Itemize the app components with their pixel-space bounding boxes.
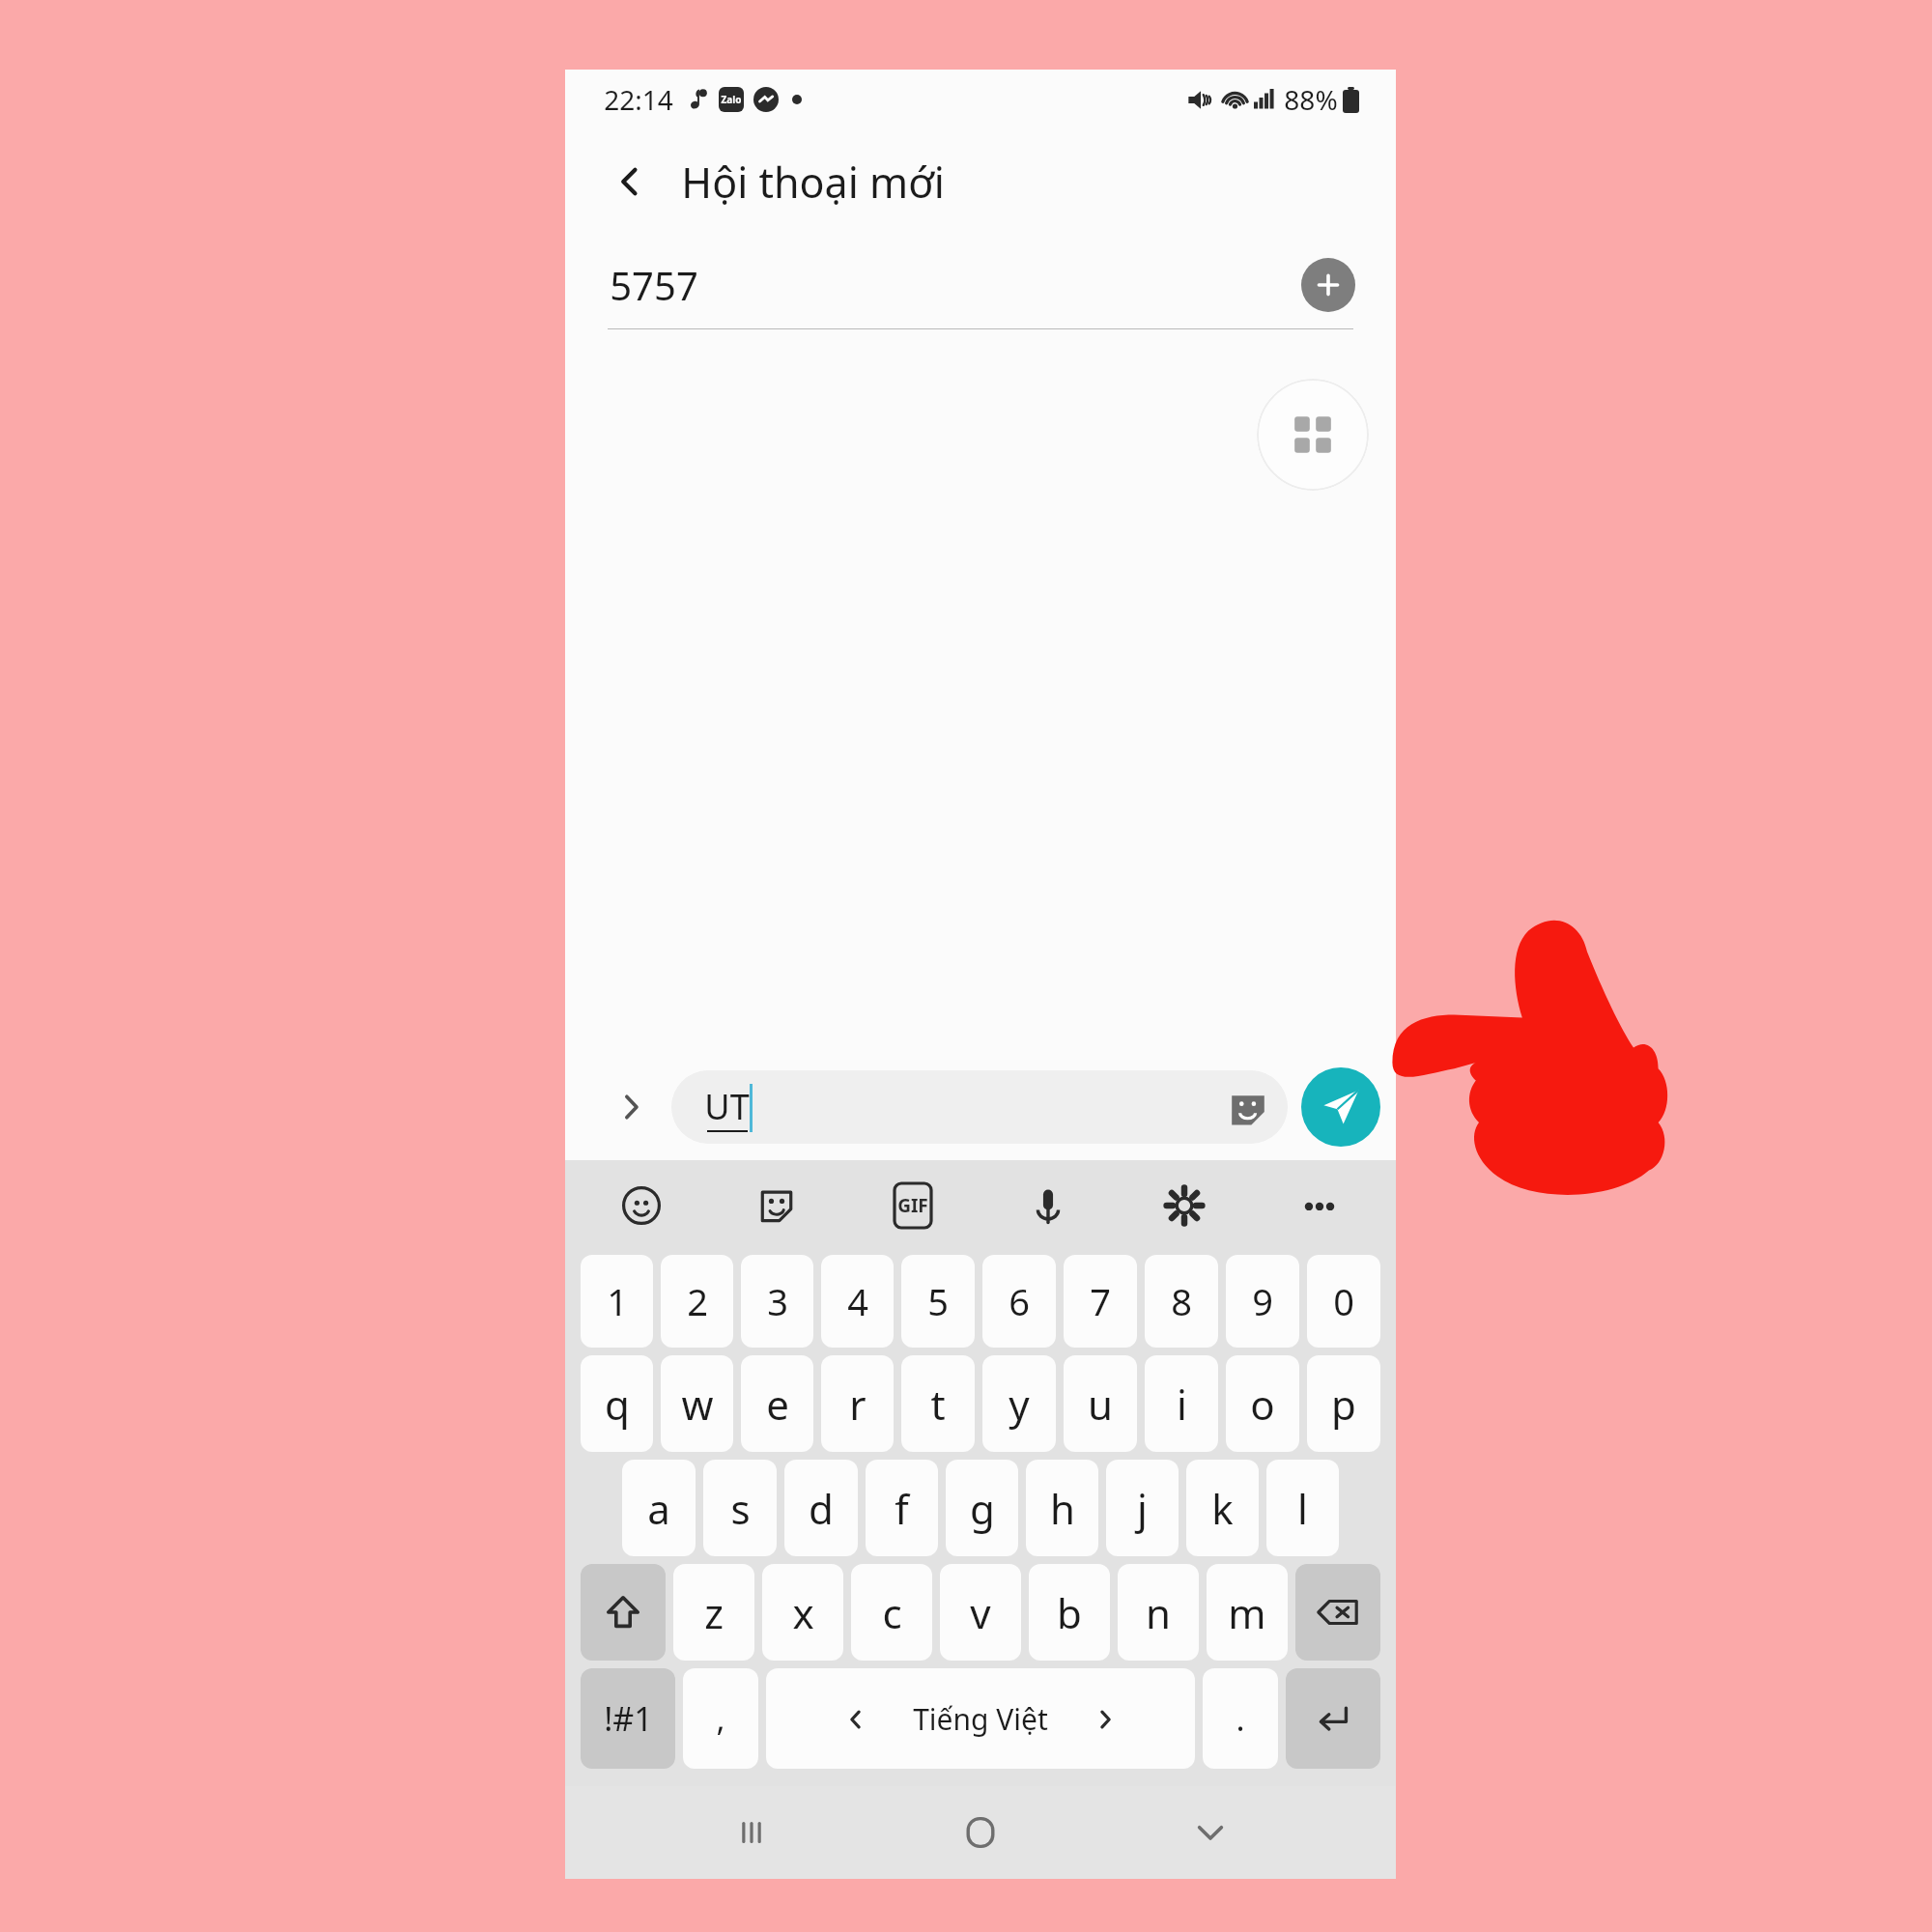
button[interactable]: 5 <box>901 1255 975 1348</box>
button[interactable]: Hide keyboard <box>1167 1789 1254 1876</box>
staticText: , <box>716 1696 725 1741</box>
button[interactable]: 2 <box>661 1255 733 1348</box>
button[interactable]: Enter <box>1286 1668 1380 1769</box>
button[interactable]: c <box>851 1564 932 1661</box>
button[interactable]: q <box>581 1355 653 1452</box>
button[interactable]: d <box>784 1460 858 1556</box>
staticText: y <box>1009 1377 1030 1432</box>
button[interactable]: k <box>1186 1460 1259 1556</box>
staticText: Hội thoại mới <box>681 154 945 211</box>
button[interactable]: Recents <box>708 1789 795 1876</box>
staticText: n <box>1146 1585 1171 1640</box>
button[interactable]: More options <box>1290 1176 1350 1236</box>
staticText: o <box>1250 1377 1275 1432</box>
button[interactable]: UT <box>671 1070 1288 1144</box>
button[interactable]: t <box>901 1355 975 1452</box>
button[interactable]: 8 <box>1145 1255 1218 1348</box>
button[interactable]: s <box>703 1460 777 1556</box>
staticText: e <box>766 1377 789 1432</box>
staticText: i <box>1177 1377 1187 1432</box>
button[interactable]: , <box>683 1668 758 1769</box>
button[interactable]: Tiếng Việt <box>766 1668 1195 1769</box>
staticText: Tiếng Việt <box>913 1699 1048 1739</box>
button[interactable]: j <box>1106 1460 1179 1556</box>
button[interactable]: u <box>1064 1355 1137 1452</box>
staticText: 22:14 <box>604 81 673 118</box>
staticText: GIF <box>897 1193 928 1218</box>
staticText: Zalo <box>721 93 742 106</box>
button[interactable]: Backspace <box>1295 1564 1380 1661</box>
button[interactable]: 3 <box>741 1255 813 1348</box>
button[interactable]: 9 <box>1226 1255 1299 1348</box>
button[interactable]: 4 <box>821 1255 894 1348</box>
staticText: 2 <box>687 1276 708 1326</box>
button[interactable]: Shift <box>581 1564 666 1661</box>
button[interactable]: Settings <box>1154 1176 1214 1236</box>
staticText: k <box>1211 1481 1234 1536</box>
button[interactable]: a <box>622 1460 696 1556</box>
staticText: t <box>930 1377 946 1432</box>
button[interactable]: 6 <box>982 1255 1056 1348</box>
button[interactable]: e <box>741 1355 813 1452</box>
button[interactable]: r <box>821 1355 894 1452</box>
button[interactable]: Home <box>937 1789 1024 1876</box>
button[interactable]: !#1 <box>581 1668 675 1769</box>
button[interactable]: i <box>1145 1355 1218 1452</box>
staticText: !#1 <box>604 1696 653 1741</box>
button[interactable]: 7 <box>1064 1255 1137 1348</box>
staticText: 3 <box>767 1276 788 1326</box>
staticText: f <box>895 1481 909 1536</box>
button[interactable]: Apps <box>1257 379 1369 491</box>
button[interactable]: n <box>1118 1564 1199 1661</box>
staticText: a <box>647 1481 670 1536</box>
button[interactable]: 1 <box>581 1255 653 1348</box>
staticText: 6 <box>1009 1276 1030 1326</box>
staticText: w <box>681 1377 714 1432</box>
staticText: s <box>730 1481 751 1536</box>
staticText: m <box>1228 1585 1266 1640</box>
button[interactable]: z <box>673 1564 754 1661</box>
button[interactable]: Stickers <box>1228 1087 1268 1127</box>
button[interactable]: . <box>1203 1668 1278 1769</box>
button[interactable]: p <box>1307 1355 1380 1452</box>
button[interactable]: h <box>1026 1460 1098 1556</box>
button[interactable]: Emoji <box>611 1176 671 1236</box>
button[interactable]: g <box>946 1460 1018 1556</box>
staticText: p <box>1331 1377 1356 1432</box>
staticText: x <box>792 1585 814 1640</box>
button[interactable]: f <box>866 1460 938 1556</box>
staticText: 88% <box>1284 81 1338 118</box>
button[interactable]: 0 <box>1307 1255 1380 1348</box>
staticText: 9 <box>1252 1276 1273 1326</box>
button[interactable]: y <box>982 1355 1056 1452</box>
button[interactable]: Expand <box>604 1080 658 1134</box>
staticText: d <box>809 1481 834 1536</box>
staticText: u <box>1088 1377 1113 1432</box>
staticText: v <box>970 1585 991 1640</box>
staticText: b <box>1057 1585 1082 1640</box>
button[interactable]: Sticker <box>747 1176 807 1236</box>
staticText: 8 <box>1171 1276 1192 1326</box>
staticText: q <box>605 1377 630 1432</box>
button[interactable]: Send <box>1301 1067 1380 1147</box>
button[interactable]: b <box>1029 1564 1110 1661</box>
staticText: . <box>1236 1696 1245 1741</box>
button[interactable]: GIF <box>883 1176 943 1236</box>
button[interactable]: v <box>940 1564 1021 1661</box>
staticText: z <box>704 1585 724 1640</box>
staticText: 5 <box>927 1276 949 1326</box>
staticText: 5757 <box>610 259 698 311</box>
staticText: r <box>849 1377 867 1432</box>
staticText: 4 <box>847 1276 868 1326</box>
button[interactable]: Add recipient <box>1301 258 1355 312</box>
button[interactable]: l <box>1266 1460 1339 1556</box>
button[interactable]: m <box>1207 1564 1288 1661</box>
staticText: 7 <box>1090 1276 1111 1326</box>
button[interactable]: x <box>762 1564 843 1661</box>
button[interactable]: o <box>1226 1355 1299 1452</box>
staticText: c <box>882 1585 902 1640</box>
button[interactable]: Back <box>596 148 664 215</box>
button[interactable]: w <box>661 1355 733 1452</box>
button[interactable]: Voice input <box>1018 1176 1078 1236</box>
staticText: h <box>1050 1481 1075 1536</box>
